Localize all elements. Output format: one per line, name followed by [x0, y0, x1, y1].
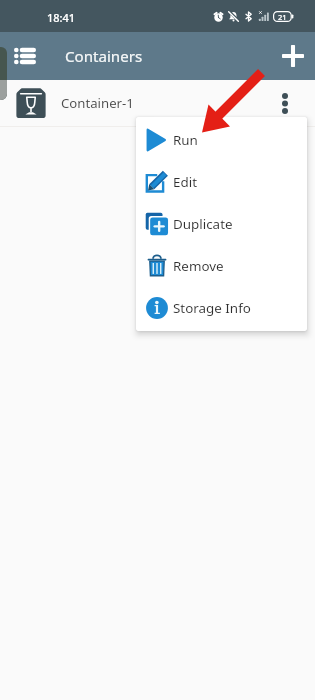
- staticText: Storage Info: [173, 299, 251, 317]
- button[interactable]: Add container: [271, 34, 315, 78]
- button[interactable]: Remove: [136, 245, 307, 287]
- staticText: Containers: [65, 46, 143, 67]
- staticText: Remove: [173, 257, 224, 275]
- button[interactable]: Run: [136, 119, 307, 161]
- button[interactable]: Storage Info: [136, 287, 307, 329]
- staticText: Edit: [173, 173, 197, 191]
- button[interactable]: Edit: [136, 161, 307, 203]
- button[interactable]: Container-1: [0, 80, 315, 126]
- staticText: 21: [278, 12, 287, 22]
- button[interactable]: More options: [263, 81, 307, 125]
- button[interactable]: Duplicate: [136, 203, 307, 245]
- staticText: Run: [173, 131, 198, 149]
- button[interactable]: Open navigation drawer: [3, 34, 47, 78]
- staticText: Duplicate: [173, 215, 233, 233]
- staticText: Container-1: [61, 94, 134, 112]
- staticText: 18:41: [47, 10, 76, 25]
